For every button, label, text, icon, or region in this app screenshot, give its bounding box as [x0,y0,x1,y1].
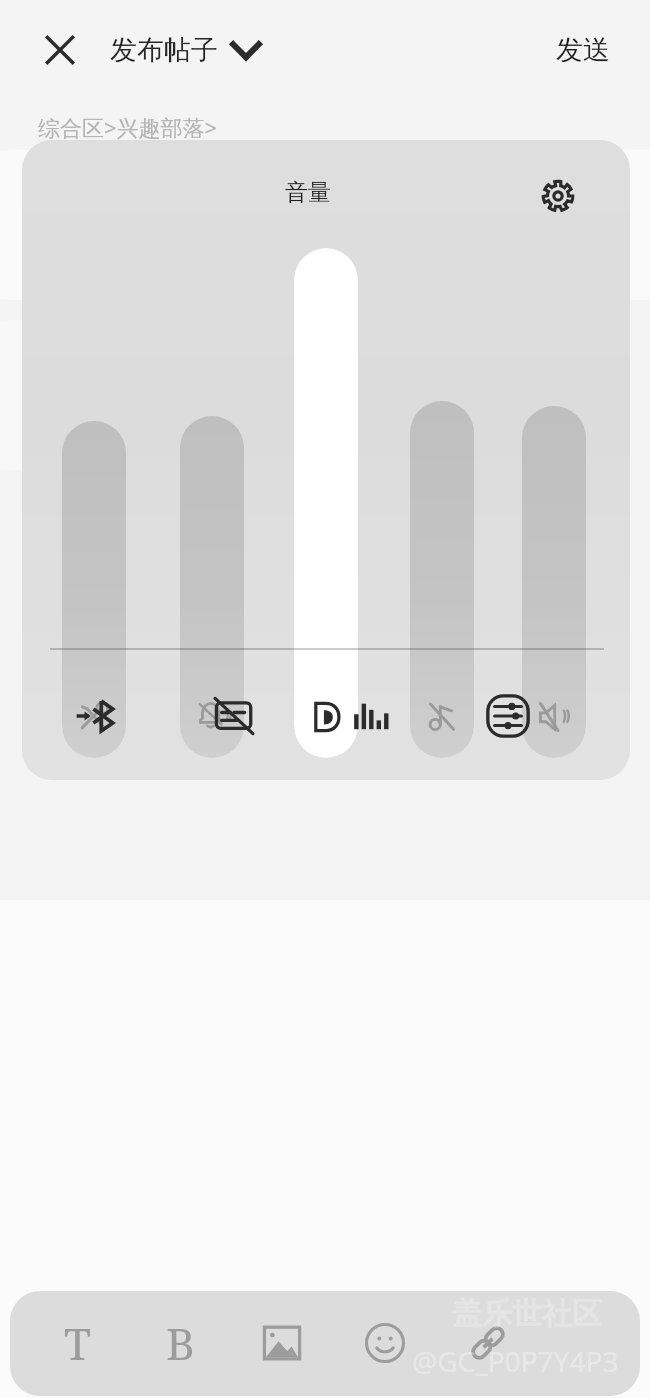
button[interactable]: Volume slider 4 [410,248,474,758]
button[interactable]: Insert link [450,1305,526,1381]
button[interactable]: Emoji [347,1305,423,1381]
button[interactable]: Volume slider 1 [62,248,126,758]
staticText: B [166,1313,195,1373]
button[interactable]: Volume slider 5 [522,248,586,758]
button[interactable]: Volume slider 2 [180,248,244,758]
button[interactable]: Volume slider 3 [294,248,358,758]
button[interactable]: Sound settings [474,682,542,750]
staticText: 综合区>兴趣部落> [38,112,218,142]
staticText: T [64,1313,91,1373]
button[interactable]: Bluetooth output [62,682,130,750]
staticText: @GC_P0P7Y4P3 [412,1342,619,1380]
staticText: 音量 [285,178,331,207]
button[interactable]: 发送 [546,25,620,75]
button[interactable]: Sound settings [530,168,586,224]
button[interactable]: Subtitles off [200,682,268,750]
button[interactable]: Insert image [244,1305,320,1381]
button[interactable]: Bold [142,1305,218,1381]
button[interactable]: Close [34,24,86,76]
button[interactable]: Text style [39,1305,115,1381]
staticText: 发布帖子 [110,33,218,67]
staticText: 盖乐世社区 [452,1295,602,1333]
button[interactable]: 发布帖子 [106,27,264,73]
staticText: 发送 [556,33,610,67]
button[interactable]: Equalizer [336,682,404,750]
